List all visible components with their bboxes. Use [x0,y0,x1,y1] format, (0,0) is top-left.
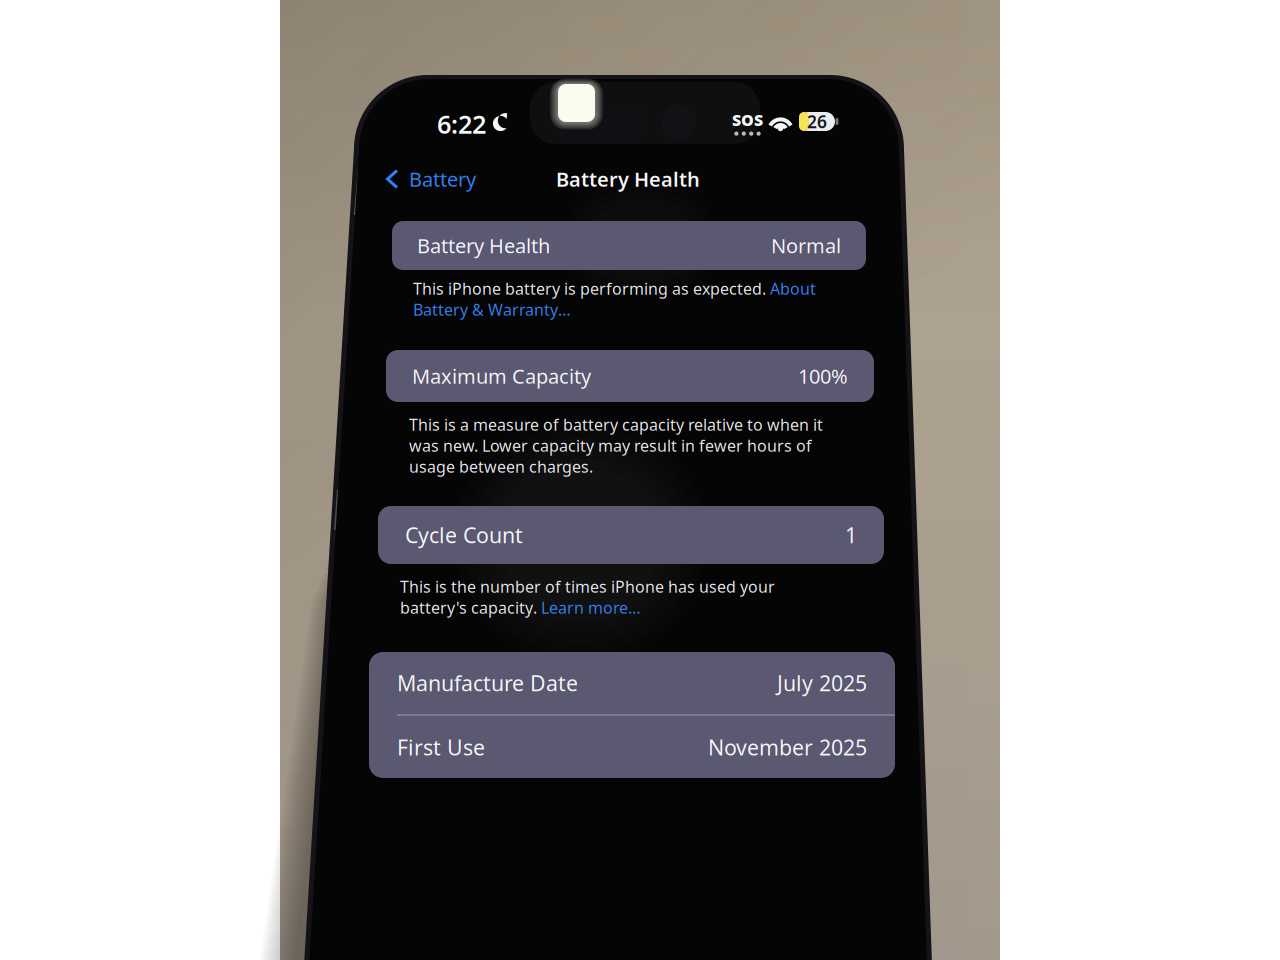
staticText: Manufacture Date [397,669,578,697]
staticText: This iPhone battery is performing as exp… [413,278,770,299]
staticText: Normal [771,232,841,259]
staticText: 1 [845,521,857,549]
staticText: usage between charges. [409,456,593,477]
staticText: This is the number of times iPhone has u… [400,576,775,597]
button[interactable]: Manufacture Date [369,651,895,714]
staticText: About [770,278,816,299]
staticText: battery's capacity. [400,597,541,618]
staticText: Maximum Capacity [412,363,591,389]
button[interactable]: Battery Health [392,221,866,270]
staticText: Battery & Warranty… [413,299,571,320]
staticText: 26 [807,110,827,133]
staticText: Battery Health [556,166,700,192]
staticText: First Use [397,733,485,761]
staticText: SOS [732,109,763,130]
staticText: was new. Lower capacity may result in fe… [409,435,812,456]
button[interactable]: Battery [385,162,515,196]
button[interactable]: First Use [369,716,895,779]
button[interactable]: Cycle Count [378,506,884,564]
button[interactable]: Maximum Capacity [386,350,874,402]
staticText: Battery [409,166,476,192]
staticText: November 2025 [708,733,867,761]
staticText: Learn more… [541,597,641,618]
staticText: This is a measure of battery capacity re… [409,414,823,435]
staticText: 100% [798,363,848,389]
staticText: Cycle Count [405,521,523,549]
staticText: Battery Health [417,232,550,259]
staticText: July 2025 [777,669,867,697]
staticText: 6:22 [437,107,486,141]
